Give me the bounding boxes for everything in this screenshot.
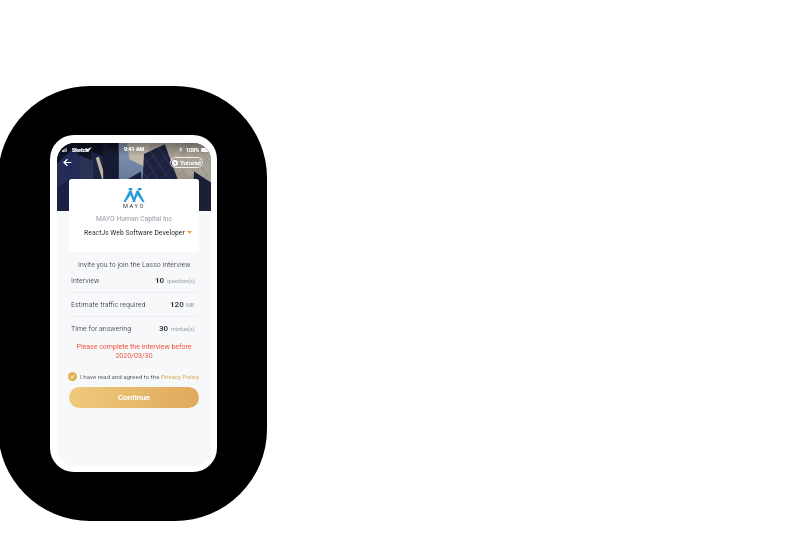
button[interactable]: Interview — [57, 269, 211, 292]
staticText: question(s) — [167, 278, 195, 284]
button[interactable]: Estimate traffic required — [57, 293, 211, 316]
staticText: 10 — [155, 276, 165, 285]
staticText: ? — [174, 161, 177, 166]
staticText: Tutorial — [180, 159, 201, 166]
staticText: Interview — [71, 277, 100, 285]
staticText: 30 — [159, 324, 169, 333]
staticText: Sketch — [72, 147, 89, 153]
button[interactable]: Back — [61, 156, 74, 169]
button[interactable]: ReactJs Web Software Developer — [69, 228, 199, 237]
staticText: Please complete the interview before 202… — [57, 343, 211, 360]
staticText: mintue(s) — [171, 326, 195, 332]
staticText: Invite you to join the Lasso interview — [78, 261, 191, 269]
button[interactable]: Continue — [69, 387, 199, 408]
staticText: MAYO — [123, 203, 145, 210]
staticText: 9:41 AM — [124, 146, 145, 152]
button[interactable]: I have read and agreed to the — [68, 372, 200, 381]
staticText: I have read and agreed to the — [80, 373, 161, 380]
staticText: ReactJs Web Software Developer — [84, 229, 185, 237]
staticText: MAYO Human Capital Inc — [96, 215, 173, 223]
staticText: 100% — [186, 147, 200, 153]
button[interactable]: Time for answering — [57, 317, 211, 340]
staticText: Privacy Policy — [161, 373, 200, 380]
staticText: 120 — [170, 300, 184, 309]
staticText: Time for answering — [71, 325, 132, 333]
staticText: Continue — [118, 393, 150, 402]
staticText: MB — [186, 302, 195, 308]
button[interactable]: ? — [170, 157, 203, 168]
staticText: Estimate traffic required — [71, 301, 146, 309]
